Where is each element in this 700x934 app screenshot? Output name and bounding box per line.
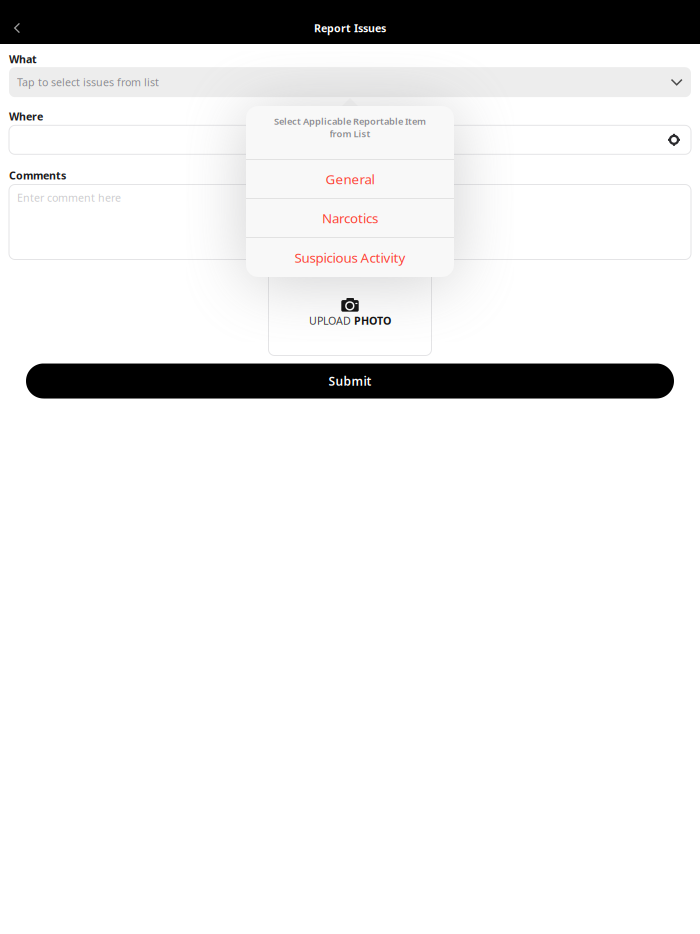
staticText: Comments bbox=[9, 168, 66, 182]
staticText: Report Issues bbox=[314, 21, 386, 35]
staticText: UPLOAD bbox=[309, 313, 351, 328]
button[interactable]: Tap to select issues from list bbox=[9, 67, 691, 97]
button[interactable]: General bbox=[246, 160, 454, 198]
staticText: Submit bbox=[328, 373, 371, 389]
button[interactable]: UPLOAD bbox=[268, 270, 431, 355]
button[interactable]: Narcotics bbox=[246, 199, 454, 237]
button[interactable]: Suspicious Activity bbox=[246, 238, 454, 277]
staticText: General bbox=[325, 170, 374, 188]
button[interactable]: Use current location bbox=[663, 125, 685, 154]
button[interactable]: Back bbox=[0, 13, 44, 43]
staticText: Select Applicable Reportable Item bbox=[274, 115, 426, 127]
staticText: Enter comment here bbox=[17, 190, 121, 205]
staticText: Tap to select issues from list bbox=[17, 75, 159, 89]
staticText: from List bbox=[329, 127, 370, 140]
button[interactable]: Submit bbox=[26, 363, 674, 398]
staticText: PHOTO bbox=[354, 313, 391, 328]
staticText: Suspicious Activity bbox=[294, 249, 405, 266]
staticText: What bbox=[9, 52, 37, 66]
staticText: Where bbox=[9, 109, 43, 123]
staticText: Narcotics bbox=[322, 209, 378, 227]
